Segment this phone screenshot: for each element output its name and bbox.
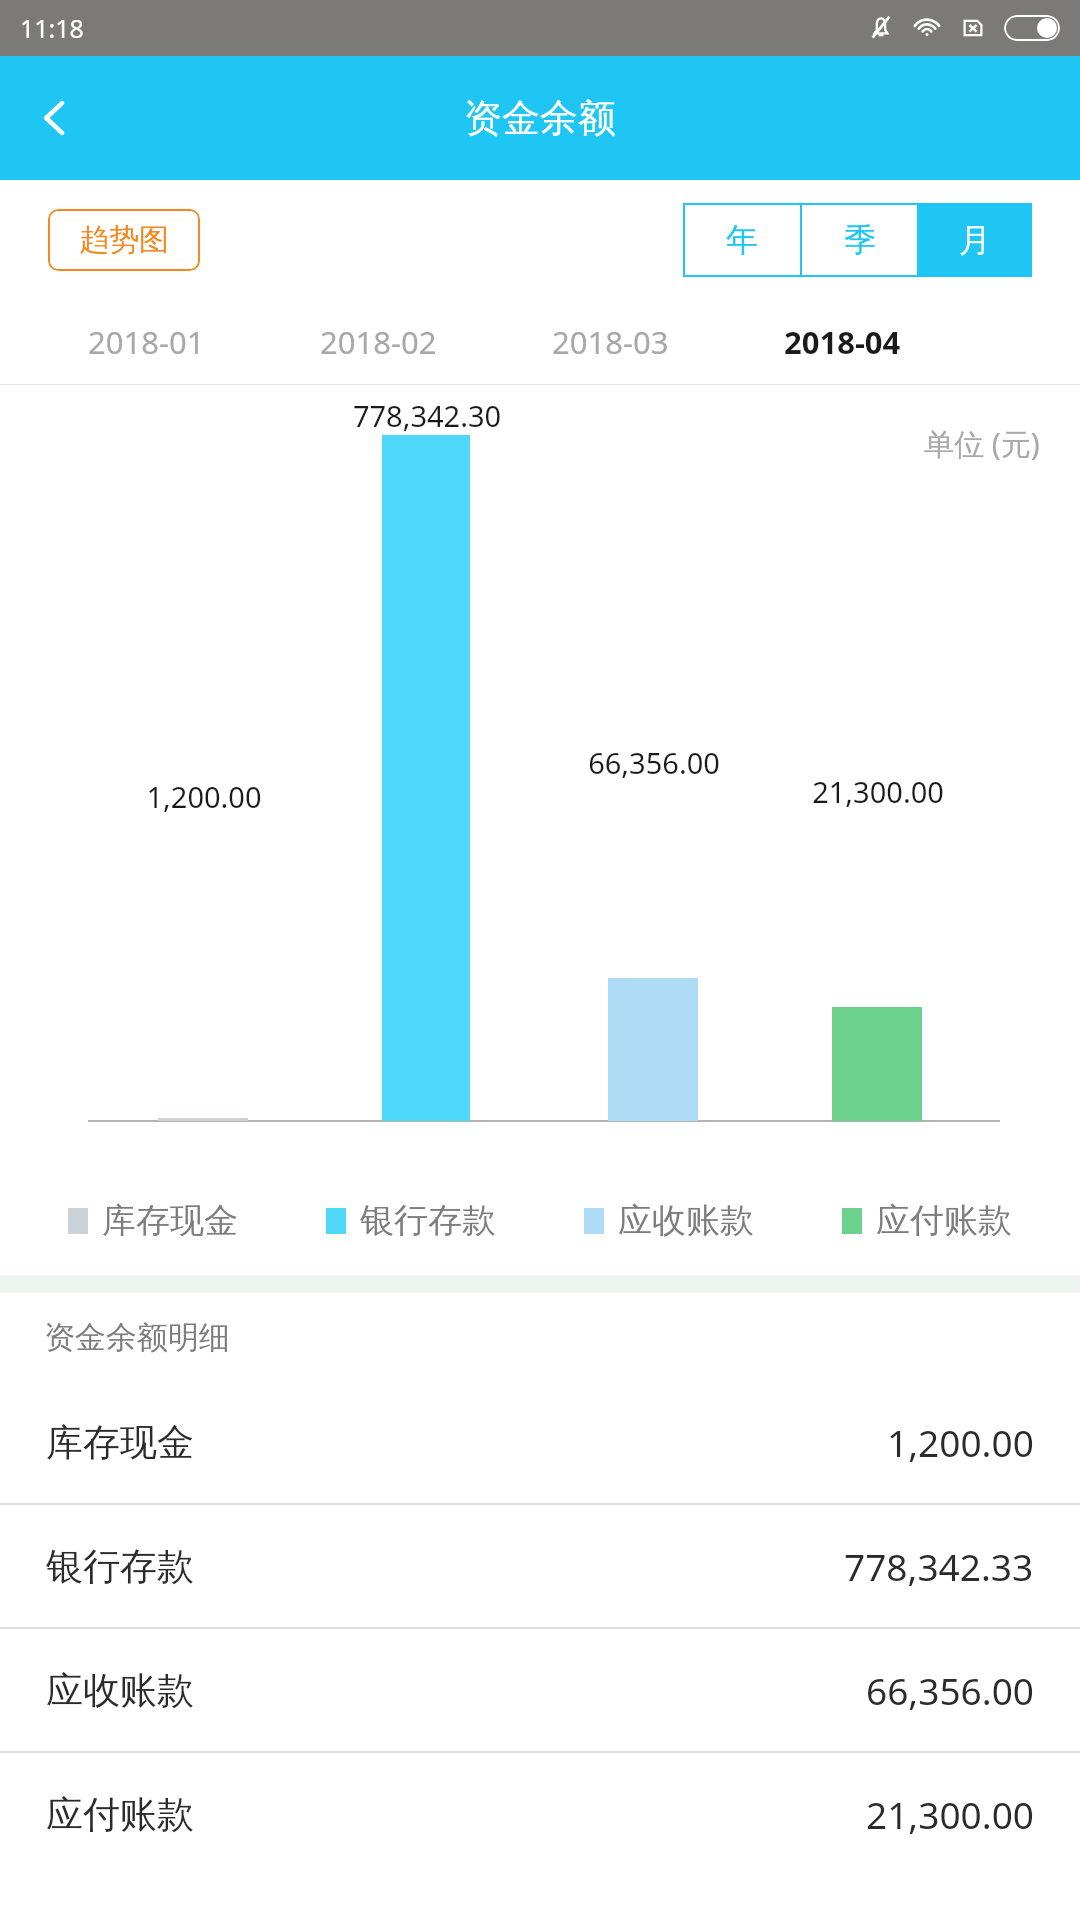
staticText: 2018-01	[88, 321, 205, 363]
staticText: 2018-02	[320, 321, 437, 363]
staticText: 年	[726, 220, 758, 260]
staticText: 季	[844, 220, 876, 260]
button[interactable]: 银行存款	[0, 1505, 1080, 1627]
staticText: 单位 (元)	[924, 423, 1040, 464]
button[interactable]: Back	[0, 56, 110, 180]
staticText: 66,356.00	[558, 743, 750, 782]
staticText: 2018-04	[784, 321, 901, 363]
staticText: 应收账款	[46, 1667, 194, 1714]
staticText: 月	[959, 220, 991, 260]
button[interactable]: 库存现金	[24, 1199, 282, 1242]
staticText: 2018-03	[552, 321, 669, 363]
button[interactable]: 应收账款	[540, 1199, 798, 1242]
staticText: 资金余额	[464, 94, 616, 142]
staticText: 应付账款	[46, 1791, 194, 1838]
staticText: 778,342.33	[844, 1541, 1034, 1591]
button[interactable]: 银行存款	[282, 1199, 540, 1242]
button[interactable]: 趋势图	[48, 209, 200, 271]
staticText: 库存现金	[102, 1199, 238, 1242]
staticText: 1,200.00	[887, 1417, 1034, 1467]
button[interactable]: 月	[917, 203, 1032, 277]
staticText: 66,356.00	[866, 1665, 1034, 1715]
button[interactable]: 年	[683, 203, 800, 277]
button[interactable]: 季	[802, 203, 917, 277]
staticText: 21,300.00	[782, 772, 974, 811]
staticText: 资金余额明细	[44, 1318, 230, 1357]
staticText: 11:18	[20, 11, 84, 45]
button[interactable]: 2018-03	[494, 300, 726, 384]
button[interactable]: 2018-04	[726, 300, 958, 384]
button[interactable]: 应付账款	[0, 1753, 1080, 1875]
button[interactable]: 应收账款	[0, 1629, 1080, 1751]
button[interactable]: 库存现金	[0, 1381, 1080, 1503]
button[interactable]: 应付账款	[798, 1199, 1056, 1242]
staticText: 778,342.30	[320, 396, 534, 435]
button[interactable]: 2018-02	[262, 300, 494, 384]
staticText: 趋势图	[79, 221, 169, 259]
staticText: 1,200.00	[118, 777, 290, 816]
staticText: 21,300.00	[866, 1789, 1034, 1839]
staticText: 银行存款	[360, 1199, 496, 1242]
button[interactable]: 2018-01	[30, 300, 262, 384]
staticText: 银行存款	[46, 1543, 194, 1590]
staticText: 应付账款	[876, 1199, 1012, 1242]
staticText: 库存现金	[46, 1419, 194, 1466]
staticText: 应收账款	[618, 1199, 754, 1242]
